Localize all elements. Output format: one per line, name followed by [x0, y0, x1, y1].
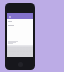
button[interactable]: Home: [18, 62, 23, 67]
button[interactable]: [7, 13, 33, 19]
